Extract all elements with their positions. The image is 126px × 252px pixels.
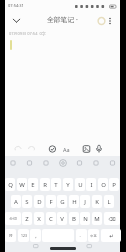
- button[interactable]: I: [86, 178, 96, 191]
- button[interactable]: 符: [5, 229, 16, 242]
- staticText: 全部笔记 ·: [47, 15, 78, 24]
- button[interactable]: S: [22, 195, 32, 208]
- button[interactable]: F: [46, 195, 56, 208]
- staticText: S: [25, 198, 29, 206]
- staticText: 07月09日 07:54 0字: [9, 31, 79, 37]
- button[interactable]: Y: [63, 178, 73, 191]
- button[interactable]: G: [57, 195, 67, 208]
- button[interactable]: C: [46, 212, 56, 225]
- staticText: Y: [66, 181, 70, 189]
- button[interactable]: D: [34, 195, 44, 208]
- staticText: ⌫: [108, 216, 116, 222]
- staticText: Aa: [63, 146, 70, 153]
- staticText: E: [31, 181, 35, 189]
- staticText: K: [95, 198, 99, 206]
- button[interactable]: Z: [22, 212, 32, 225]
- staticText: F: [49, 198, 53, 206]
- button[interactable]: H: [69, 195, 79, 208]
- button[interactable]: T: [51, 178, 61, 191]
- button[interactable]: J: [80, 195, 90, 208]
- button[interactable]: Q: [5, 178, 15, 191]
- staticText: D: [37, 198, 42, 206]
- staticText: X: [37, 215, 41, 223]
- staticText: L: [107, 198, 111, 206]
- button[interactable]: ,: [30, 229, 41, 242]
- button[interactable]: U: [75, 178, 85, 191]
- staticText: V: [60, 215, 64, 223]
- button[interactable]: ↵: [101, 229, 121, 242]
- button[interactable]: N: [80, 212, 90, 225]
- button[interactable]: [105, 13, 115, 27]
- staticText: P: [112, 181, 116, 189]
- staticText: I: [90, 181, 93, 189]
- staticText: G: [60, 198, 65, 206]
- button[interactable]: B: [69, 212, 79, 225]
- staticText: ↵: [109, 233, 114, 239]
- button[interactable]: M: [92, 212, 102, 225]
- staticText: R: [43, 181, 47, 189]
- button[interactable]: K: [92, 195, 102, 208]
- button[interactable]: Aa: [60, 142, 72, 156]
- button[interactable]: [95, 13, 108, 27]
- button[interactable]: V: [57, 212, 67, 225]
- staticText: 中英: [90, 234, 97, 238]
- button[interactable]: 123: [18, 229, 29, 242]
- staticText: 07:54:31: [8, 3, 34, 9]
- button[interactable]: E: [28, 178, 38, 191]
- staticText: A: [14, 198, 18, 206]
- button[interactable]: [10, 14, 23, 26]
- button[interactable]: A: [11, 195, 21, 208]
- staticText: W: [19, 181, 25, 189]
- staticText: N: [83, 215, 88, 223]
- button[interactable]: X: [34, 212, 44, 225]
- button[interactable]: 分词: [5, 212, 21, 225]
- button[interactable]: P: [109, 178, 119, 191]
- staticText: 分词: [9, 216, 17, 221]
- staticText: 123: [21, 233, 27, 238]
- staticText: U: [78, 181, 83, 189]
- button[interactable]: W: [17, 178, 27, 191]
- staticText: O: [101, 181, 106, 189]
- staticText: C: [49, 215, 53, 223]
- staticText: H: [72, 198, 77, 206]
- staticText: 。: [79, 233, 84, 239]
- staticText: M: [94, 215, 100, 223]
- staticText: J: [84, 198, 86, 206]
- staticText: B: [72, 215, 76, 223]
- staticText: ,: [35, 232, 37, 239]
- button[interactable]: O: [98, 178, 108, 191]
- button[interactable]: 。: [76, 229, 87, 242]
- staticText: Z: [25, 215, 29, 223]
- button[interactable]: 中英: [88, 229, 99, 242]
- button[interactable]: L: [104, 195, 114, 208]
- button[interactable]: 全部笔记 ·: [41, 13, 83, 25]
- button[interactable]: R: [40, 178, 50, 191]
- staticText: T: [54, 181, 58, 189]
- staticText: 符: [9, 233, 13, 238]
- button[interactable]: ⌫: [104, 212, 120, 225]
- staticText: Q: [8, 181, 13, 189]
